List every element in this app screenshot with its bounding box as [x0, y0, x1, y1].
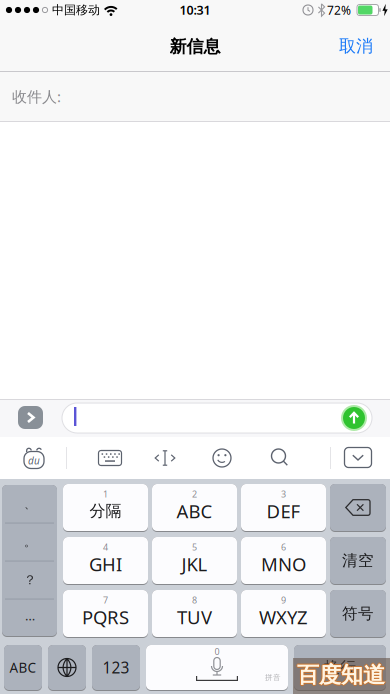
button[interactable]: 9 [241, 590, 326, 638]
staticText: 符号 [342, 604, 374, 623]
button[interactable]: 4 [63, 537, 148, 585]
button[interactable]: 删除 [330, 484, 386, 532]
staticText: 分隔 [89, 501, 121, 521]
button[interactable]: 8 [152, 590, 237, 638]
button[interactable]: 百度输入法 [22, 447, 46, 469]
staticText: du [28, 454, 40, 467]
button[interactable]: 符号 [330, 590, 386, 638]
staticText: 3 [281, 488, 286, 500]
button[interactable]: 空格 [146, 645, 288, 691]
staticText: 7 [103, 594, 108, 606]
staticText: ABC [9, 658, 36, 676]
staticText: 0 [214, 645, 219, 657]
staticText: 、 [24, 497, 36, 511]
button[interactable]: ABC [4, 645, 42, 691]
staticText: 百度知道 [298, 661, 386, 688]
button[interactable]: 表情 [212, 448, 232, 468]
button[interactable]: 搜索 [270, 448, 290, 468]
staticText: MNO [261, 552, 306, 576]
staticText: 72% [327, 2, 351, 18]
staticText: 新信息 [169, 36, 220, 57]
staticText: 6 [281, 541, 286, 553]
button[interactable]: 2 [152, 484, 237, 532]
staticText: 10:31 [179, 2, 210, 18]
staticText: 清空 [342, 551, 374, 570]
button[interactable]: 收件人 [0, 72, 390, 121]
staticText: 百度知道 [297, 662, 385, 689]
button[interactable]: 6 [241, 537, 326, 585]
staticText: JKL [181, 552, 207, 576]
staticText: 1 [103, 488, 108, 500]
staticText: PQRS [82, 605, 129, 629]
button[interactable]: 键盘 [98, 449, 122, 467]
staticText: 4 [103, 541, 108, 553]
button[interactable]: 展开 [18, 406, 43, 429]
staticText: TUV [177, 605, 212, 629]
button[interactable]: 3 [241, 484, 326, 532]
button[interactable]: 取消 [332, 31, 380, 61]
staticText: 百度知道 [297, 661, 385, 688]
staticText: 5 [192, 541, 197, 553]
button[interactable]: 123 [92, 645, 140, 691]
staticText: ABC [176, 499, 212, 523]
staticText: 2 [192, 488, 197, 500]
staticText: ？ [23, 572, 36, 588]
button[interactable]: 7 [63, 590, 148, 638]
staticText: GHI [89, 552, 122, 576]
staticText: 取消 [339, 36, 373, 56]
button[interactable]: 5 [152, 537, 237, 585]
staticText: 123 [102, 657, 129, 678]
staticText: 9 [281, 594, 286, 606]
staticText: WXYZ [259, 605, 308, 629]
button[interactable]: 发送 [341, 405, 367, 431]
button[interactable]: 1 [63, 484, 148, 532]
button[interactable]: 标点 [2, 485, 57, 637]
staticText: 百度知道 [296, 661, 384, 688]
staticText: 8 [192, 594, 197, 606]
staticText: 百度知道 [297, 660, 385, 687]
staticText: … [25, 607, 35, 624]
staticText: 。 [24, 535, 36, 549]
button[interactable]: 清空 [330, 537, 386, 585]
button[interactable]: 换行 [294, 645, 386, 691]
staticText: 收件人: [12, 86, 61, 106]
staticText: 换行 [324, 658, 356, 677]
staticText: 中国移动 [52, 3, 100, 17]
button[interactable]: 收起键盘 [344, 447, 372, 468]
staticText: DEF [266, 499, 300, 523]
staticText: 拼音 [265, 673, 281, 682]
button[interactable]: 光标 [153, 449, 177, 467]
button[interactable]: 下一个输入法 [48, 645, 86, 691]
